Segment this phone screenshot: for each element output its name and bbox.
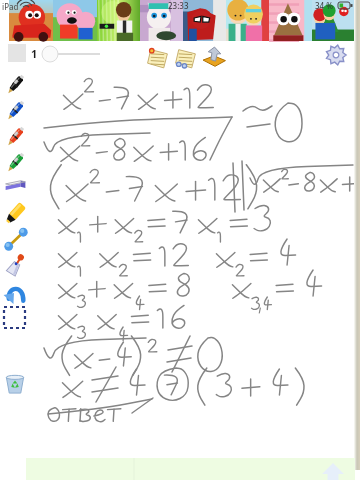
button[interactable] [40, 45, 102, 63]
button[interactable]: Pen [4, 124, 28, 148]
button[interactable]: Game [140, 0, 183, 41]
button[interactable]: Find note [173, 45, 199, 71]
staticText: iPad [2, 1, 19, 12]
button[interactable]: Game [269, 0, 312, 41]
staticText: 1 [31, 46, 38, 61]
button[interactable]: Pin [3, 252, 29, 278]
button[interactable]: Eraser [3, 174, 29, 200]
button[interactable]: Pen [4, 72, 28, 96]
button[interactable]: Line tool [3, 226, 29, 252]
button[interactable]: Select [3, 306, 26, 329]
staticText: 34 % [315, 0, 334, 11]
button[interactable]: Game [183, 0, 226, 41]
button[interactable]: Game [312, 0, 355, 41]
button[interactable]: Game [226, 0, 269, 41]
button[interactable]: Pen [4, 98, 28, 122]
button[interactable]: Game [9, 0, 53, 41]
button[interactable]: Game [53, 0, 97, 41]
button[interactable]: Highlighter [3, 200, 29, 226]
staticText: 23:33 [168, 0, 189, 11]
button[interactable]: Export [201, 45, 227, 71]
button[interactable]: Scroll up [26, 458, 355, 480]
button[interactable]: Delete [3, 371, 27, 395]
button[interactable]: Settings [325, 44, 347, 66]
button[interactable]: Game [97, 0, 140, 41]
button[interactable]: Pen [4, 150, 28, 174]
button[interactable]: New note [145, 45, 171, 71]
button[interactable]: Undo [2, 280, 28, 306]
